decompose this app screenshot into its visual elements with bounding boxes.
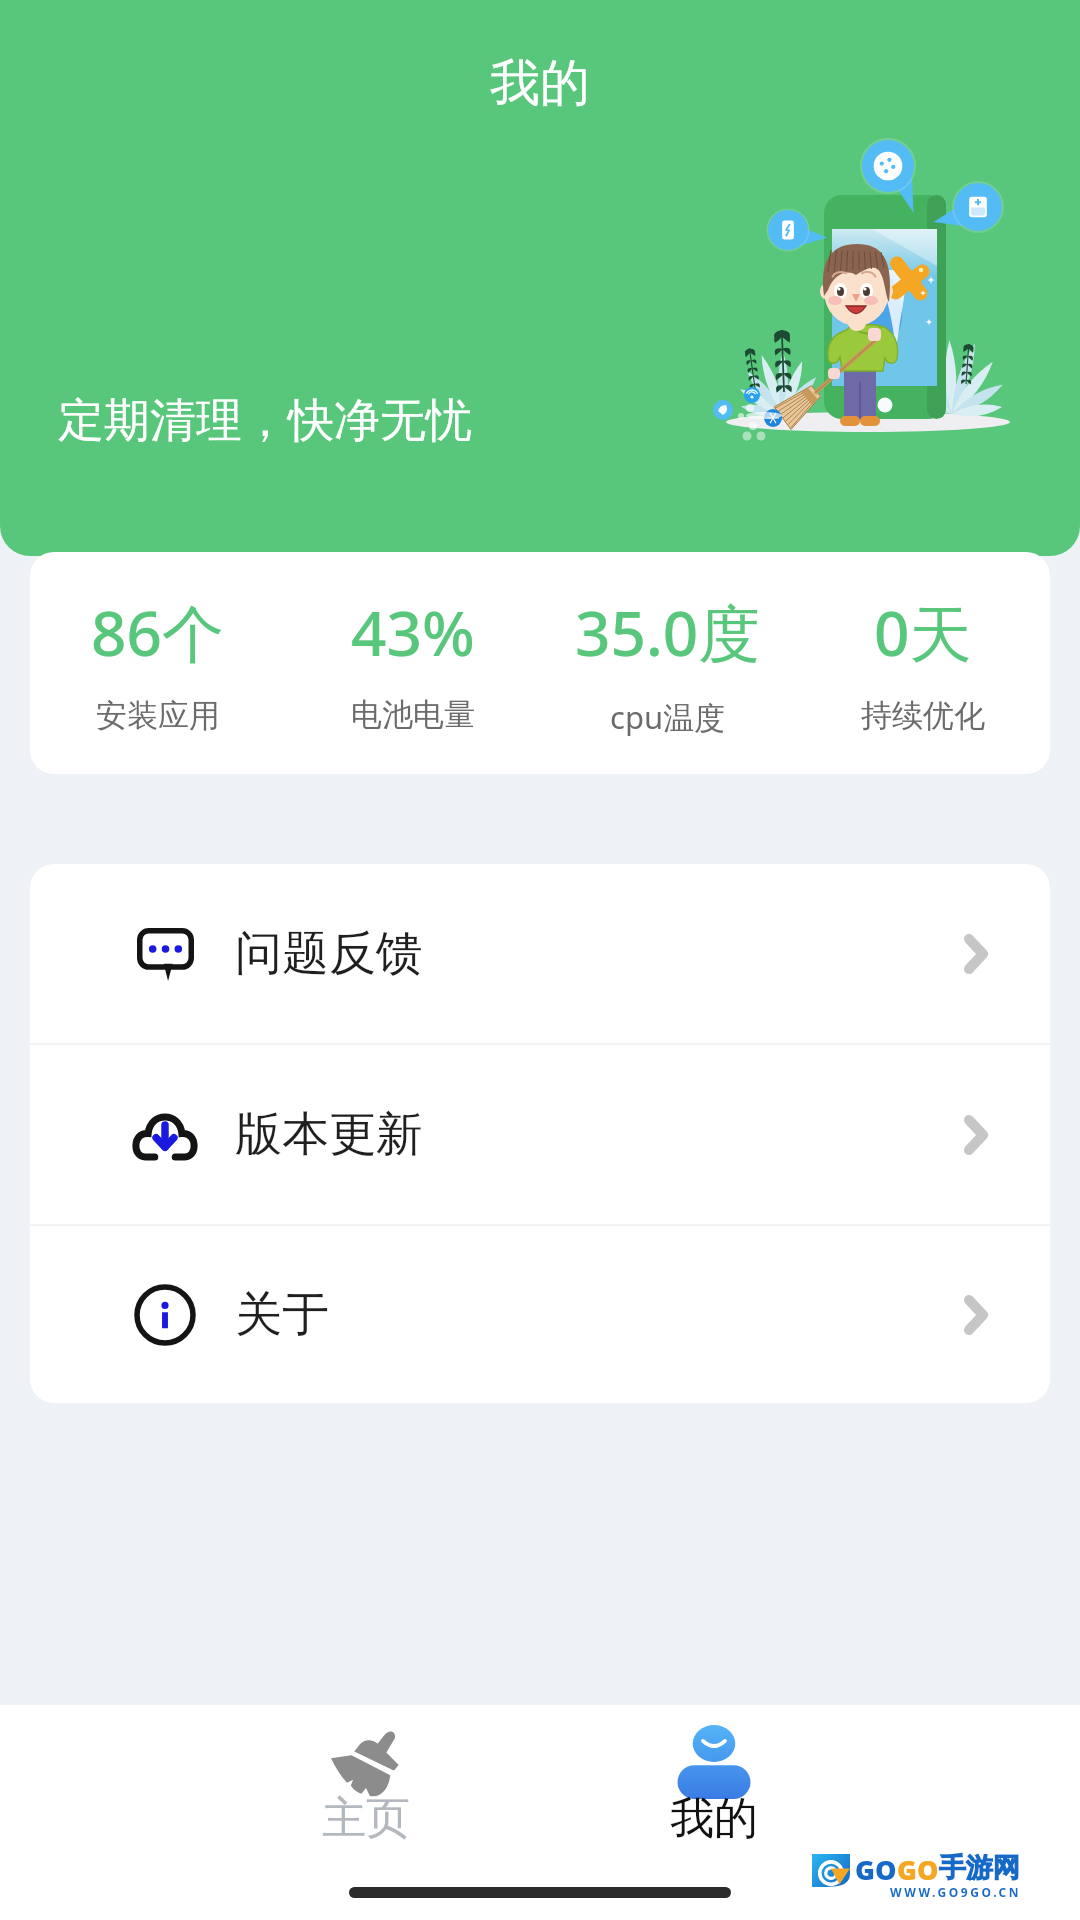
- staticText: 86个: [91, 590, 224, 675]
- button[interactable]: 问题反馈: [30, 864, 1050, 1043]
- staticText: GO: [897, 1851, 939, 1888]
- button[interactable]: 主页: [192, 1705, 540, 1875]
- staticText: 我的: [670, 1791, 758, 1846]
- staticText: 0天: [874, 590, 972, 675]
- button[interactable]: 我的: [540, 1705, 888, 1875]
- staticText: WWW.GO9GO.CN: [890, 1884, 1022, 1900]
- staticText: 43%: [351, 590, 475, 674]
- staticText: cpu温度: [610, 696, 726, 738]
- staticText: GO: [855, 1851, 897, 1888]
- staticText: 定期清理，快净无忧: [58, 392, 472, 450]
- staticText: 我的: [0, 52, 1080, 115]
- staticText: 手游网: [939, 1851, 1020, 1885]
- staticText: 安装应用: [96, 696, 220, 735]
- staticText: 持续优化: [861, 696, 985, 735]
- staticText: 关于: [235, 1285, 329, 1344]
- staticText: 35.0度: [575, 590, 761, 675]
- staticText: 主页: [322, 1791, 410, 1846]
- staticText: 电池电量: [351, 695, 475, 734]
- staticText: 问题反馈: [235, 924, 423, 983]
- staticText: 版本更新: [235, 1105, 423, 1164]
- button[interactable]: 关于: [30, 1226, 1050, 1403]
- button[interactable]: 版本更新: [30, 1045, 1050, 1224]
